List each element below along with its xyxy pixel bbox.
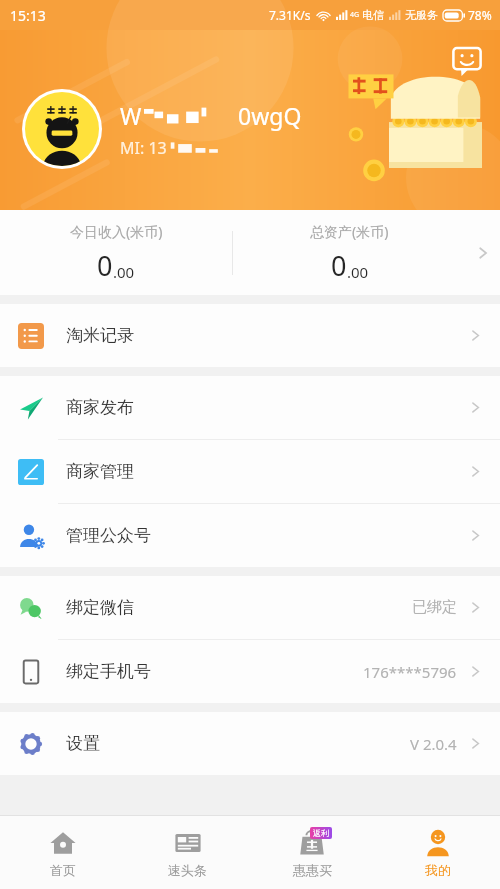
staticText: 电信 bbox=[362, 8, 384, 22]
button[interactable]: 返利 bbox=[250, 816, 375, 889]
button[interactable]: Profile avatar bbox=[25, 92, 99, 166]
staticText: 7.31K/s bbox=[269, 7, 311, 23]
staticText: 4G bbox=[350, 10, 360, 20]
staticText: 0 bbox=[97, 247, 113, 284]
staticText: 无服务 bbox=[405, 8, 438, 22]
staticText: 176****5796 bbox=[363, 662, 457, 682]
button[interactable]: 淘米记录 bbox=[0, 304, 500, 367]
staticText: .00 bbox=[347, 262, 369, 282]
staticText: 惠惠买 bbox=[293, 862, 332, 878]
button[interactable]: Messages bbox=[450, 44, 484, 78]
staticText: 我的 bbox=[425, 862, 451, 878]
staticText: 今日收入(米币) bbox=[70, 222, 163, 241]
button[interactable]: 商家发布 bbox=[0, 376, 500, 440]
staticText: 0 bbox=[331, 247, 347, 284]
staticText: 淘米记录 bbox=[66, 325, 134, 346]
staticText: 商家发布 bbox=[66, 397, 134, 418]
button[interactable]: 绑定微信 bbox=[0, 576, 500, 640]
staticText: 速头条 bbox=[168, 862, 207, 878]
staticText: W bbox=[120, 100, 142, 131]
staticText: 15:13 bbox=[10, 6, 46, 25]
staticText: 绑定手机号 bbox=[66, 661, 151, 682]
button[interactable]: 速头条 bbox=[125, 816, 250, 889]
button[interactable]: 我的 bbox=[375, 816, 500, 889]
staticText: MI: 13 bbox=[120, 137, 167, 159]
button[interactable]: 管理公众号 bbox=[0, 504, 500, 567]
staticText: 总资产(米币) bbox=[310, 222, 389, 241]
staticText: 商家管理 bbox=[66, 461, 134, 482]
staticText: .00 bbox=[113, 262, 135, 282]
button[interactable]: 商家管理 bbox=[0, 440, 500, 504]
button[interactable]: 设置 bbox=[0, 712, 500, 775]
button[interactable]: 今日收入(米币) bbox=[0, 210, 500, 295]
staticText: V 2.0.4 bbox=[410, 734, 457, 754]
staticText: 返利 bbox=[313, 828, 329, 838]
staticText: 首页 bbox=[50, 862, 76, 878]
staticText: 管理公众号 bbox=[66, 525, 151, 546]
button[interactable]: 首页 bbox=[0, 816, 125, 889]
staticText: 78% bbox=[468, 7, 492, 23]
button[interactable]: 绑定手机号 bbox=[0, 640, 500, 703]
staticText: 绑定微信 bbox=[66, 597, 134, 618]
staticText: 已绑定 bbox=[412, 598, 457, 617]
staticText: 设置 bbox=[66, 733, 100, 754]
staticText: 0wgQ bbox=[238, 100, 302, 131]
